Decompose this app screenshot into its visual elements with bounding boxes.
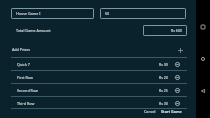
staticText: House Game I [16,11,41,16]
button[interactable]: Quick 7 [0,58,196,71]
staticText: Third Row [17,101,35,106]
staticText: First Row [17,75,33,80]
staticText: Quick 7 [17,62,30,67]
staticText: Rs 30 [159,101,168,106]
staticText: Cancel [144,109,156,114]
staticText: Total Game Amount [16,28,51,33]
staticText: Second Row [17,88,38,93]
staticText: Start Game [161,109,182,114]
button[interactable]: Remove prize [173,73,182,82]
button[interactable]: Remove prize [173,60,182,69]
staticText: Rs 600 [171,28,182,33]
button[interactable]: Back [198,86,208,96]
button[interactable]: 50 [100,8,186,19]
staticText: 50 [105,11,110,16]
button[interactable]: Home [198,54,208,64]
button[interactable]: Recents [198,22,208,32]
button[interactable]: Start Game [158,109,185,118]
button[interactable]: Remove prize [173,86,182,95]
staticText: Rs 30 [159,62,168,67]
staticText: Rs 20 [159,75,168,80]
button[interactable]: Second Row [0,84,196,97]
staticText: Add Prizes [12,47,31,52]
button[interactable]: Rs 600 [143,25,187,36]
staticText: Rs 25 [159,88,168,93]
button[interactable]: Add prize [176,46,185,55]
button[interactable]: First Row [0,71,196,84]
button[interactable]: Third Row [0,97,196,109]
button[interactable]: Remove prize [173,99,182,108]
button[interactable]: House Game I [11,8,94,19]
button[interactable]: Cancel [141,109,158,118]
